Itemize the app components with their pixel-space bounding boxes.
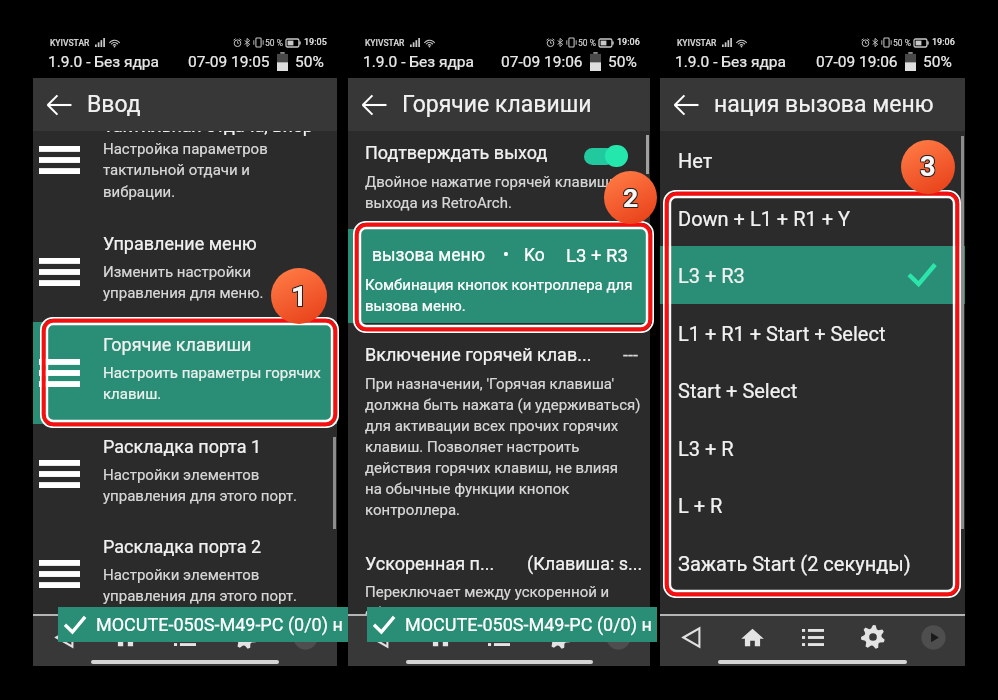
button[interactable]: Back bbox=[674, 619, 710, 655]
button[interactable]: Back bbox=[41, 87, 77, 123]
staticText: 1.9.0 - Без ядра bbox=[363, 53, 474, 71]
staticText: 2 bbox=[622, 181, 638, 212]
staticText: 50 % bbox=[893, 38, 911, 48]
staticText: Горячие клавиши bbox=[103, 334, 252, 355]
button[interactable]: Play bbox=[600, 619, 636, 655]
button[interactable]: Back bbox=[362, 619, 398, 655]
staticText: 3 bbox=[921, 150, 937, 182]
staticText: 2 bbox=[623, 182, 639, 213]
button[interactable]: вызова меню bbox=[348, 229, 650, 323]
staticText: 2 bbox=[622, 182, 638, 213]
button[interactable]: L1 + R1 + Start + Select bbox=[660, 304, 965, 362]
staticText: При назначении, 'Горячая клавиша' должна… bbox=[365, 375, 641, 519]
staticText: Двойное нажатие горячей клавиши выхода и… bbox=[365, 173, 618, 212]
staticText: 2 bbox=[622, 183, 638, 214]
button[interactable]: Recents bbox=[795, 619, 831, 655]
staticText: 1 bbox=[291, 279, 308, 312]
staticText: 19:05 bbox=[304, 37, 327, 48]
button[interactable]: Зажать Start (2 секунды) bbox=[660, 534, 965, 592]
button[interactable]: Settings bbox=[855, 619, 891, 655]
staticText: 07-09 19:06 bbox=[501, 53, 583, 71]
staticText: 3 bbox=[920, 152, 936, 184]
button[interactable]: Включение горячей клав... bbox=[348, 344, 650, 372]
button[interactable]: Горячие клавиши bbox=[33, 322, 337, 424]
staticText: 2 bbox=[623, 181, 639, 212]
button[interactable]: Settings bbox=[541, 619, 577, 655]
staticText: (Клавиша: s... bbox=[527, 553, 643, 574]
staticText: Включение горячей клав... bbox=[365, 344, 592, 365]
button[interactable]: Home bbox=[422, 619, 458, 655]
button[interactable]: Recents bbox=[167, 619, 203, 655]
button[interactable]: Play bbox=[915, 619, 951, 655]
staticText: нация вызова меню bbox=[714, 91, 934, 118]
staticText: 1 bbox=[290, 280, 307, 313]
button[interactable]: Back bbox=[668, 87, 704, 123]
button[interactable]: L3 + R bbox=[660, 419, 965, 477]
staticText: Ko bbox=[524, 245, 545, 266]
staticText: Start + Select bbox=[678, 379, 798, 402]
staticText: 2 bbox=[624, 181, 640, 212]
button[interactable]: Раскладка порта 1 bbox=[33, 424, 337, 524]
button[interactable]: MOCUTE-050S-M49-PC (0/0) н bbox=[367, 607, 657, 642]
staticText: Горячие клавиши bbox=[402, 91, 592, 118]
staticText: Настройка параметров тактильной отдачи и… bbox=[103, 140, 268, 201]
staticText: Down + L1 + R1 + Y bbox=[678, 207, 851, 230]
button[interactable]: Back bbox=[47, 619, 83, 655]
staticText: KYIVSTAR bbox=[365, 38, 405, 48]
staticText: 50% bbox=[608, 53, 637, 71]
staticText: 3 bbox=[921, 152, 937, 184]
button[interactable]: Start + Select bbox=[660, 361, 965, 419]
staticText: 19:06 bbox=[932, 37, 955, 48]
staticText: MOCUTE-050S-M49-PC (0/0) н bbox=[405, 614, 652, 635]
staticText: 2 bbox=[623, 183, 639, 214]
button[interactable]: Ускоренная п... bbox=[348, 553, 650, 581]
staticText: 3 bbox=[920, 151, 936, 183]
staticText: L1 + R1 + Start + Select bbox=[678, 322, 886, 345]
staticText: 1 bbox=[290, 279, 307, 312]
button[interactable]: Раскладка порта 2 bbox=[33, 524, 337, 614]
button[interactable]: Home bbox=[734, 619, 770, 655]
staticText: 07-09 19:06 bbox=[816, 53, 898, 71]
staticText: 2 bbox=[624, 182, 640, 213]
staticText: Раскладка порта 2 bbox=[103, 536, 262, 557]
staticText: 1 bbox=[292, 279, 309, 312]
staticText: 3 bbox=[921, 151, 937, 183]
staticText: 19:06 bbox=[617, 37, 640, 48]
button[interactable]: Управление меню bbox=[33, 221, 337, 322]
staticText: KYIVSTAR bbox=[50, 38, 90, 48]
staticText: Ускоренная п... bbox=[365, 553, 495, 574]
staticText: Комбинация кнопок контроллера для вызова… bbox=[365, 276, 633, 315]
staticText: Зажать Start (2 секунды) bbox=[678, 552, 911, 575]
button[interactable]: Recents bbox=[481, 619, 517, 655]
staticText: 50% bbox=[295, 53, 324, 71]
staticText: 3 bbox=[919, 150, 935, 182]
staticText: 50% bbox=[923, 53, 952, 71]
staticText: Изменить настройки управления для меню. bbox=[103, 263, 264, 302]
staticText: Тактильная отдача, вибр bbox=[103, 131, 313, 136]
staticText: 1 bbox=[292, 280, 309, 313]
button[interactable]: L3 + R3 bbox=[660, 246, 965, 304]
staticText: Переключает между ускоренной и обычной. bbox=[365, 583, 610, 622]
staticText: MOCUTE-050S-M49-PC (0/0) н bbox=[96, 614, 343, 635]
button[interactable]: Home bbox=[107, 619, 143, 655]
staticText: вызова меню bbox=[372, 245, 485, 266]
button[interactable]: L + R bbox=[660, 476, 965, 534]
button[interactable]: Down + L1 + R1 + Y bbox=[660, 189, 965, 247]
staticText: KYIVSTAR bbox=[677, 38, 717, 48]
staticText: Управление меню bbox=[103, 233, 257, 254]
button[interactable]: Подтверждать выход bbox=[348, 141, 650, 181]
staticText: Ввод bbox=[87, 91, 141, 118]
button[interactable]: Settings bbox=[227, 619, 263, 655]
staticText: 50 % bbox=[578, 38, 596, 48]
staticText: 3 bbox=[920, 150, 936, 182]
button[interactable]: MOCUTE-050S-M49-PC (0/0) н bbox=[58, 607, 348, 642]
staticText: Подтверждать выход bbox=[365, 142, 548, 163]
staticText: 1 bbox=[291, 280, 308, 313]
staticText: 07-09 19:05 bbox=[188, 53, 270, 71]
staticText: 50 % bbox=[265, 38, 283, 48]
staticText: 1.9.0 - Без ядра bbox=[675, 53, 786, 71]
button[interactable]: Настройка параметров тактильной отдачи и… bbox=[33, 131, 337, 221]
button[interactable]: Back bbox=[356, 87, 392, 123]
button[interactable]: Нет bbox=[660, 131, 965, 189]
button[interactable]: Play bbox=[287, 619, 323, 655]
